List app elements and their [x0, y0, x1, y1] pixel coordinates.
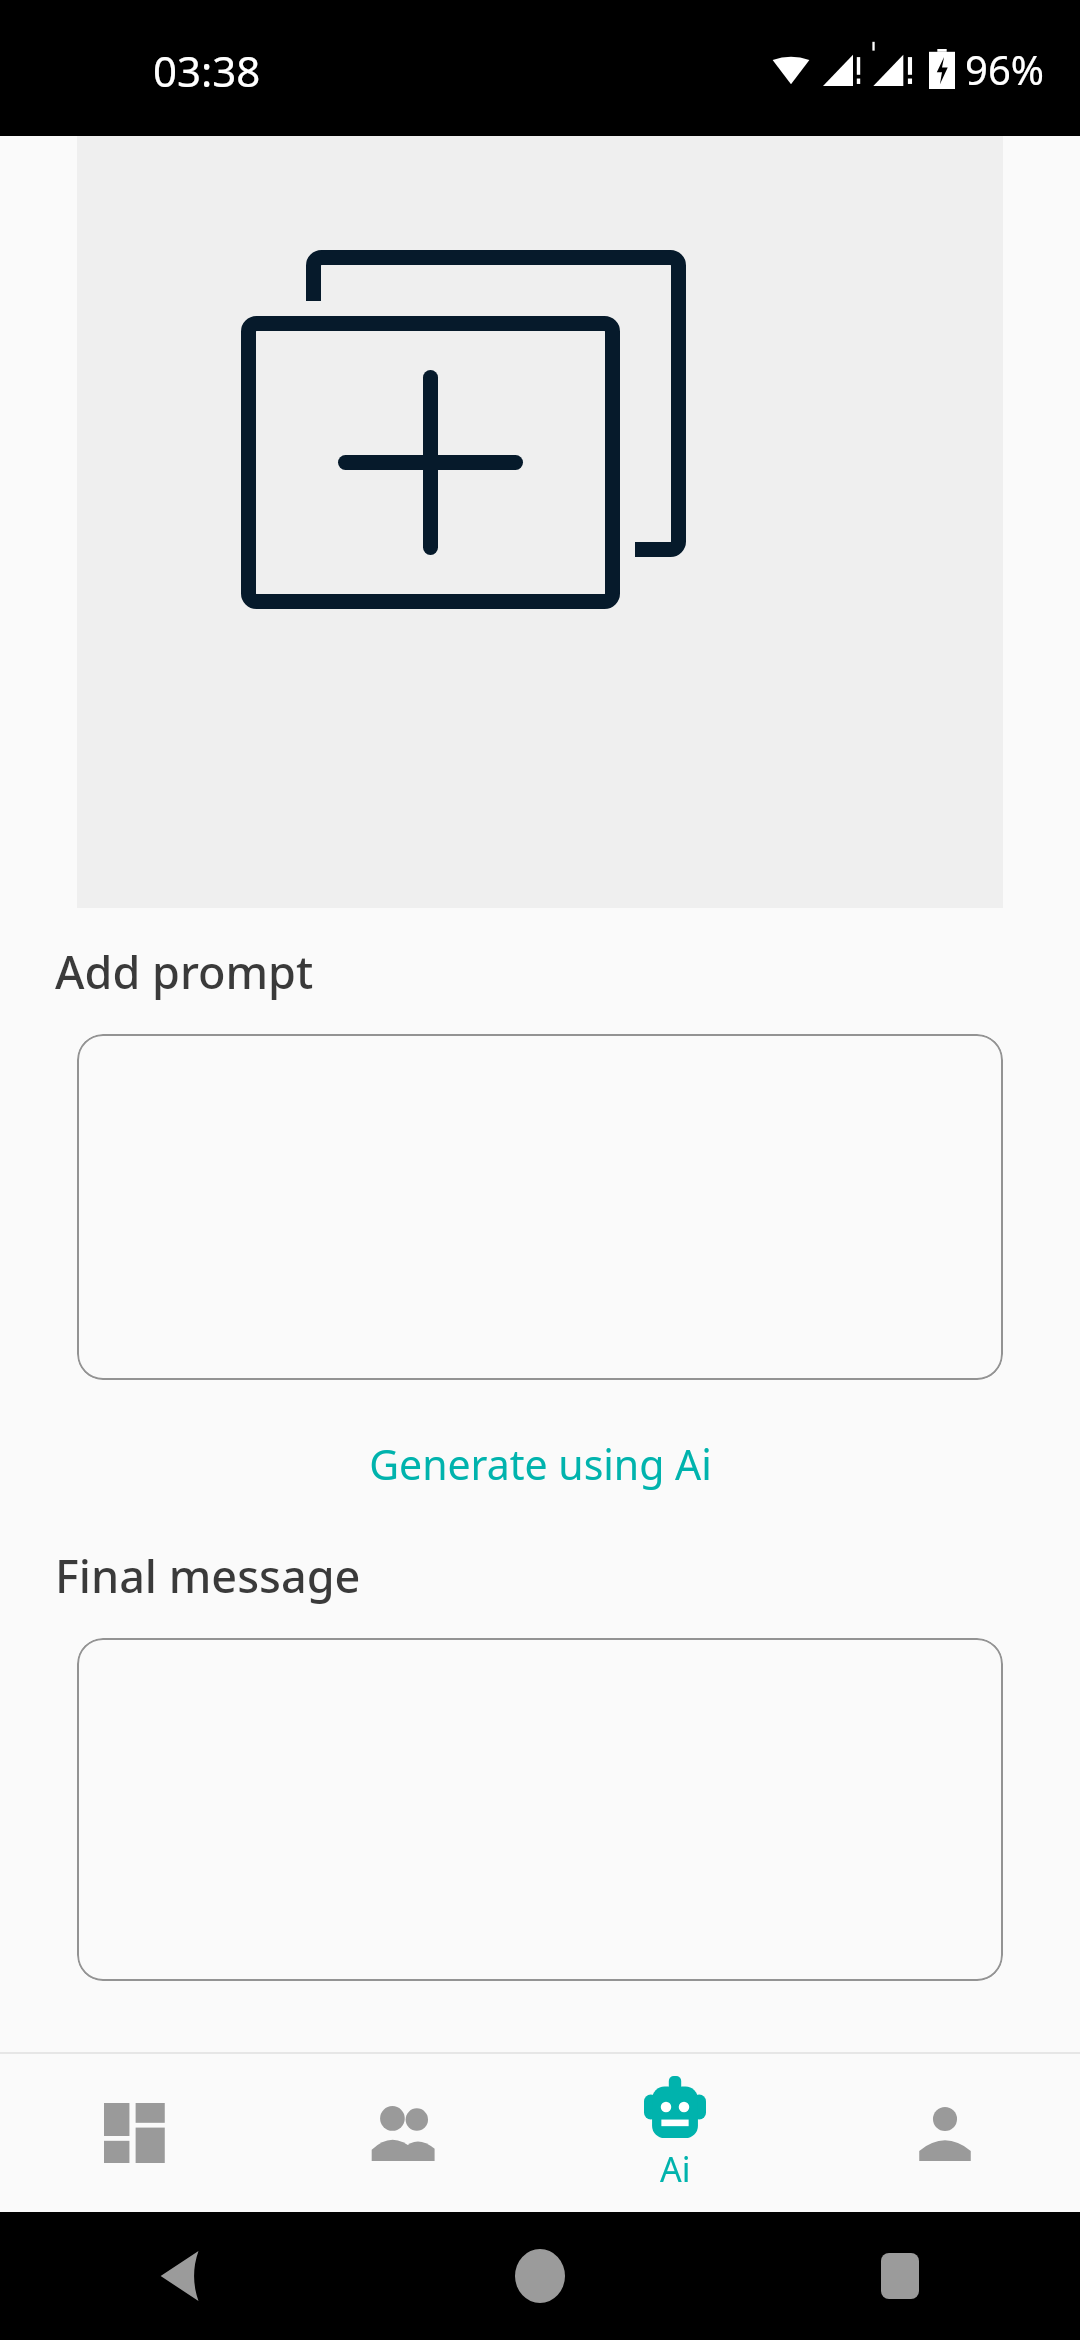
button[interactable]: [77, 1034, 1003, 1380]
button[interactable]: Profile: [810, 2054, 1080, 2212]
button[interactable]: Add photo: [77, 136, 1003, 908]
staticText: Ai: [660, 2146, 691, 2192]
button[interactable]: [77, 1638, 1003, 1981]
button[interactable]: Recent apps: [855, 2231, 945, 2321]
staticText: Generate using Ai: [369, 1436, 712, 1492]
button[interactable]: Dashboard: [0, 2054, 270, 2212]
staticText: Final message: [55, 1545, 361, 1606]
staticText: 96%: [965, 42, 1044, 96]
button[interactable]: Home: [495, 2231, 585, 2321]
button[interactable]: Generate using Ai: [0, 1426, 1080, 1502]
staticText: 03:38: [153, 42, 261, 99]
button[interactable]: Groups: [270, 2054, 540, 2212]
button[interactable]: Ai: [540, 2054, 810, 2212]
staticText: Add prompt: [55, 941, 314, 1002]
button[interactable]: Back: [135, 2231, 225, 2321]
other: Add photo: [241, 250, 701, 630]
